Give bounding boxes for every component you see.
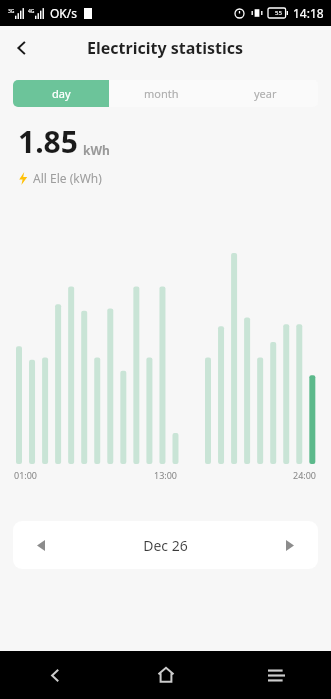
staticText: month: [144, 86, 179, 101]
staticText: kWh: [83, 142, 110, 158]
button[interactable]: Home: [111, 651, 221, 699]
staticText: day: [52, 86, 71, 101]
staticText: Electricity statistics: [87, 37, 244, 59]
staticText: year: [254, 86, 277, 101]
staticText: All Ele (kWh): [33, 170, 102, 186]
staticText: OK/s: [50, 5, 78, 21]
button[interactable]: Back: [0, 651, 111, 699]
button[interactable]: day: [13, 80, 109, 107]
staticText: 24:00: [293, 469, 317, 481]
staticText: 55: [275, 9, 282, 17]
staticText: 01:00: [14, 469, 38, 481]
button[interactable]: year: [213, 80, 318, 107]
button[interactable]: month: [109, 80, 213, 107]
button[interactable]: Previous day: [13, 521, 69, 569]
staticText: 3G: [8, 8, 15, 15]
staticText: 4G: [28, 8, 35, 15]
staticText: 13:00: [154, 469, 178, 481]
button[interactable]: Next day: [262, 521, 318, 569]
staticText: 1.85: [18, 121, 78, 162]
staticText: Dec 26: [143, 536, 188, 555]
staticText: 14:18: [293, 5, 324, 21]
button[interactable]: Back: [0, 26, 44, 70]
button[interactable]: Recent apps: [221, 651, 331, 699]
